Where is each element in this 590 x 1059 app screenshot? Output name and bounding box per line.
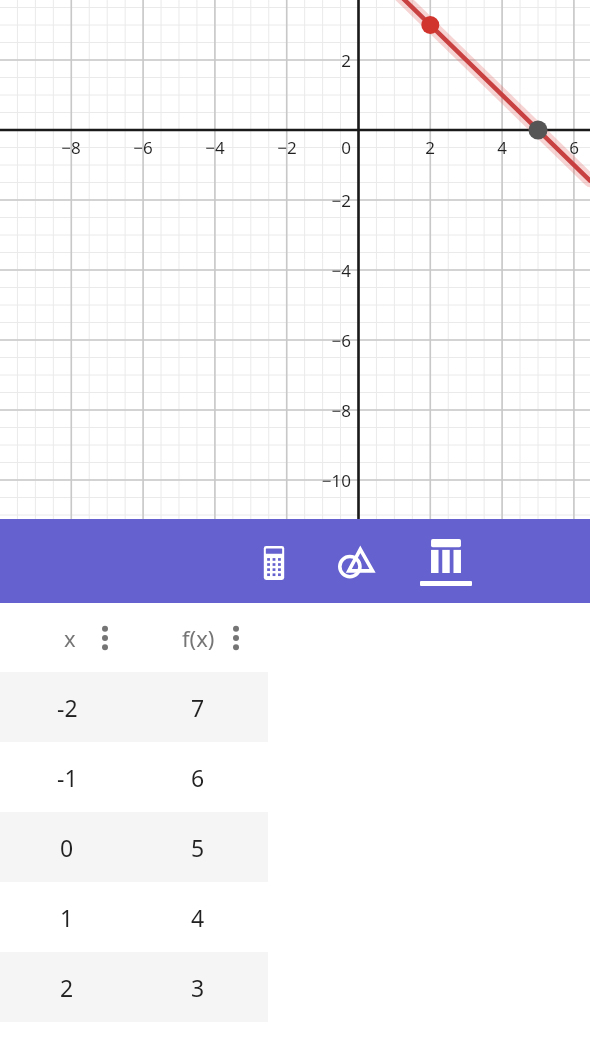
staticText: −4 xyxy=(190,136,240,159)
staticText: −6 xyxy=(299,329,351,352)
staticText: −2 xyxy=(299,189,351,212)
staticText: 6 xyxy=(191,762,205,793)
staticText: -2 xyxy=(57,692,78,723)
staticText: −6 xyxy=(118,136,168,159)
staticText: −4 xyxy=(299,259,351,282)
staticText: 6 xyxy=(549,136,590,159)
staticText: 2 xyxy=(405,136,455,159)
staticText: f(x) xyxy=(182,623,215,653)
staticText: 7 xyxy=(191,692,205,723)
button[interactable]: x xyxy=(30,603,142,672)
staticText: 4 xyxy=(477,136,527,159)
staticText: 0 xyxy=(311,136,351,159)
staticText: −8 xyxy=(46,136,96,159)
button[interactable]: 2 xyxy=(0,952,590,1022)
staticText: −8 xyxy=(299,399,351,422)
button[interactable]: f(x) xyxy=(150,603,270,672)
button[interactable]: 1 xyxy=(0,882,590,952)
staticText: -1 xyxy=(57,762,78,793)
staticText: 2 xyxy=(60,972,74,1003)
staticText: 4 xyxy=(191,902,205,933)
staticText: 3 xyxy=(191,972,205,1003)
staticText: −2 xyxy=(262,136,312,159)
button[interactable]: Calculator xyxy=(248,537,300,589)
button[interactable]: -2 xyxy=(0,672,590,742)
staticText: 1 xyxy=(60,902,74,933)
staticText: 0 xyxy=(60,832,74,863)
staticText: 5 xyxy=(191,832,205,863)
staticText: 2 xyxy=(299,49,351,72)
button[interactable]: Tools xyxy=(330,537,382,589)
button[interactable]: 0 xyxy=(0,812,590,882)
button[interactable]: Table xyxy=(414,533,478,597)
staticText: x xyxy=(64,623,76,653)
button[interactable]: -1 xyxy=(0,742,590,812)
staticText: −10 xyxy=(299,469,351,492)
